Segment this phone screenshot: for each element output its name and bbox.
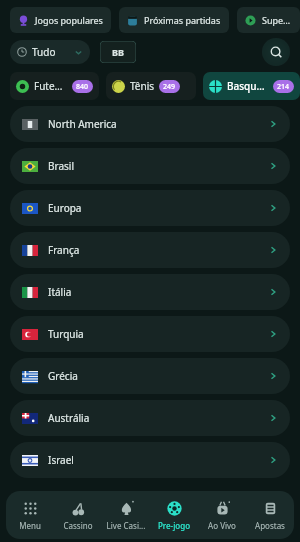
button[interactable]: North America <box>10 106 290 142</box>
button[interactable]: Pesquisar <box>262 38 290 66</box>
staticText: 840 <box>76 82 89 92</box>
button[interactable]: Europa <box>10 190 290 226</box>
button[interactable]: França <box>10 232 290 268</box>
button[interactable]: Próximas partidas <box>119 7 229 33</box>
button[interactable]: Jogos populares <box>10 7 111 33</box>
staticText: Ao Vivo <box>199 520 245 531</box>
staticText: Austrália <box>48 411 268 425</box>
button[interactable]: Apostas <box>246 491 294 539</box>
button[interactable]: Menu <box>6 491 54 539</box>
staticText: Cassino <box>55 520 101 531</box>
staticText: Tudo <box>32 45 56 59</box>
button[interactable]: Ao Vivo <box>198 491 246 539</box>
button[interactable]: Tênis <box>106 72 196 100</box>
button[interactable]: Bet builder <box>100 41 136 63</box>
staticText: Próximas partidas <box>144 14 221 26</box>
staticText: 249 <box>163 82 176 92</box>
button[interactable]: Brasil <box>10 148 290 184</box>
staticText: Apostas <box>247 520 293 531</box>
button[interactable]: Live Casi... <box>102 491 150 539</box>
staticText: Itália <box>48 285 268 299</box>
button[interactable]: Basquete <box>203 72 300 100</box>
staticText: BB <box>112 46 124 58</box>
staticText: Basquete <box>227 79 269 93</box>
staticText: Tênis <box>130 79 155 93</box>
button[interactable]: Grécia <box>10 358 290 394</box>
staticText: Jogos populares <box>35 14 103 26</box>
staticText: Menu <box>7 520 53 531</box>
button[interactable]: Israel <box>10 442 290 478</box>
button[interactable]: Cassino <box>54 491 102 539</box>
staticText: Brasil <box>48 159 268 173</box>
button[interactable]: Pre-jogo <box>150 491 198 539</box>
button[interactable]: Futebol <box>10 72 99 100</box>
staticText: Turquia <box>48 327 268 341</box>
staticText: Europa <box>48 201 268 215</box>
button[interactable]: Turquia <box>10 316 290 352</box>
staticText: França <box>48 243 268 257</box>
staticText: Futebol <box>34 79 68 93</box>
button[interactable]: Austrália <box>10 400 290 436</box>
staticText: 214 <box>277 82 290 92</box>
button[interactable]: SuperOdds <box>237 7 300 33</box>
staticText: Live Casi... <box>103 520 149 531</box>
staticText: Pre-jogo <box>151 520 197 531</box>
staticText: SuperOdds <box>262 14 292 26</box>
button[interactable]: Itália <box>10 274 290 310</box>
button[interactable]: Tudo <box>10 40 90 64</box>
staticText: North America <box>48 117 268 131</box>
staticText: Grécia <box>48 369 268 383</box>
staticText: Israel <box>48 453 268 467</box>
